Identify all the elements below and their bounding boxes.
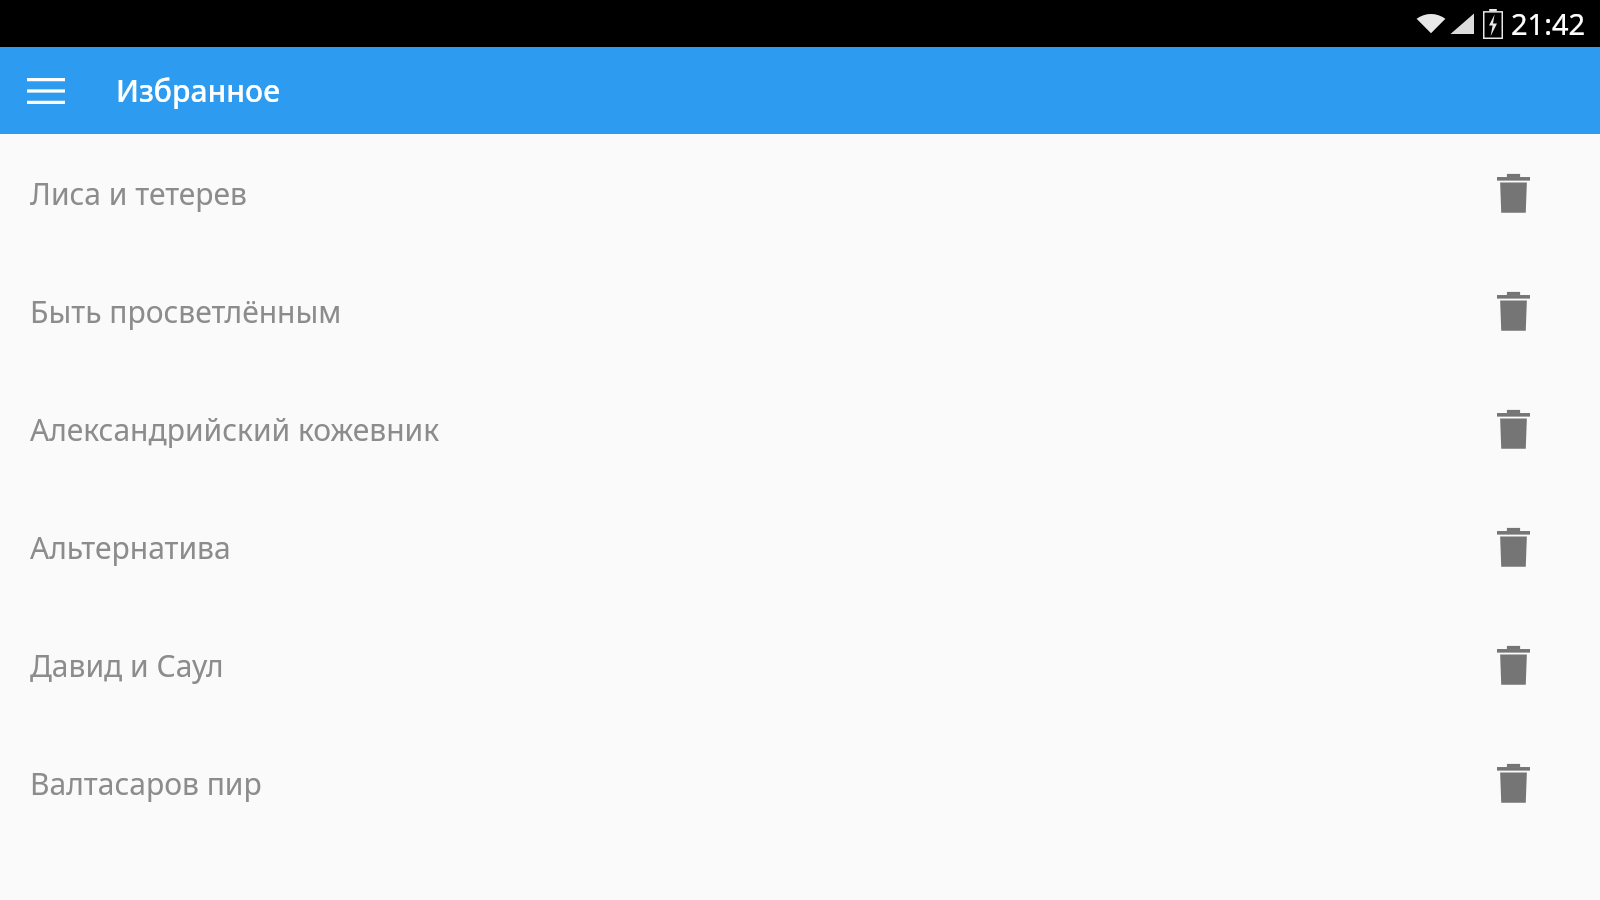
button[interactable]: Delete Быть просветлённым [1484, 282, 1542, 340]
button[interactable]: Альтернатива [0, 488, 1600, 606]
staticText: Избранное [116, 70, 280, 111]
button[interactable]: Delete Лиса и тетерев [1484, 164, 1542, 222]
button[interactable]: Delete Давид и Саул [1484, 636, 1542, 694]
staticText: Быть просветлённым [30, 291, 342, 332]
staticText: 21:42 [1511, 4, 1586, 43]
staticText: Альтернатива [30, 527, 231, 568]
button[interactable]: Давид и Саул [0, 606, 1600, 724]
staticText: Давид и Саул [30, 645, 224, 686]
button[interactable]: Delete Альтернатива [1484, 518, 1542, 576]
staticText: Лиса и тетерев [30, 173, 248, 214]
button[interactable]: Быть просветлённым [0, 252, 1600, 370]
button[interactable]: Александрийский кожевник [0, 370, 1600, 488]
button[interactable]: Delete Александрийский кожевник [1484, 400, 1542, 458]
button[interactable]: Delete Валтасаров пир [1484, 754, 1542, 812]
button[interactable]: Лиса и тетерев [0, 134, 1600, 252]
button[interactable]: Валтасаров пир [0, 724, 1600, 842]
button[interactable]: Open navigation menu [18, 63, 74, 119]
staticText: Александрийский кожевник [30, 409, 440, 450]
staticText: Валтасаров пир [30, 763, 262, 804]
